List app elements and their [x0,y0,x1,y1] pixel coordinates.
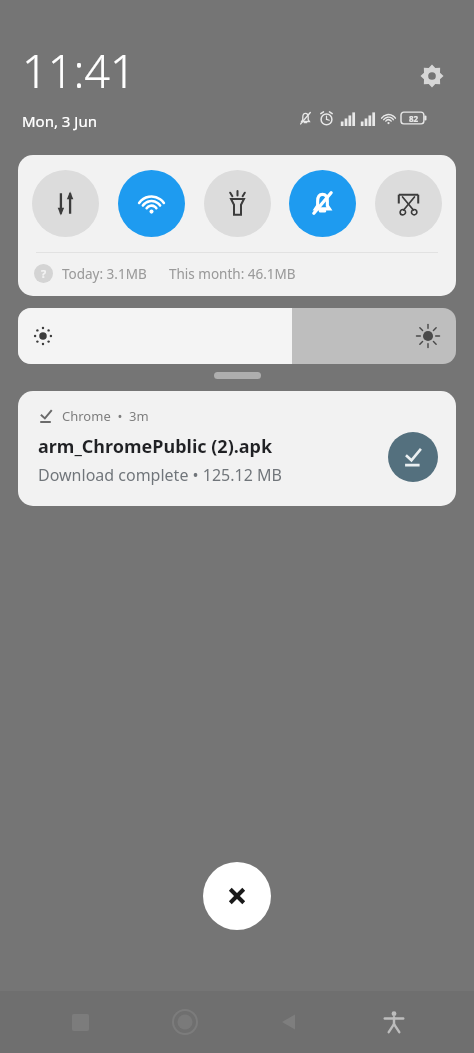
button[interactable]: Silent mode [289,170,356,237]
button[interactable]: Settings [412,56,452,96]
staticText: Mon, 3 Jun [22,111,97,131]
button[interactable]: Wi-Fi [118,170,185,237]
button[interactable]: Screenshot [375,170,442,237]
staticText: Chrome • 3m [62,407,149,425]
button[interactable]: Accessibility [370,998,418,1046]
staticText: 82 [409,113,419,124]
staticText: Download complete • 125.12 MB [38,464,282,486]
button[interactable]: Brightness [18,308,456,364]
staticText: arm_ChromePublic (2).apk [38,434,273,459]
button[interactable]: Open download [388,432,438,482]
button[interactable]: Chrome • 3m [18,391,456,506]
button[interactable]: Home [161,998,209,1046]
staticText: 11:41 [22,40,136,101]
staticText: ? [41,266,47,281]
staticText: Today: 3.1MB [62,265,147,283]
staticText: This month: 46.1MB [169,265,296,283]
button[interactable]: Clear all notifications [203,862,271,930]
button[interactable]: Mobile data [32,170,99,237]
button[interactable]: Recents [56,998,104,1046]
button[interactable]: Flashlight [204,170,271,237]
